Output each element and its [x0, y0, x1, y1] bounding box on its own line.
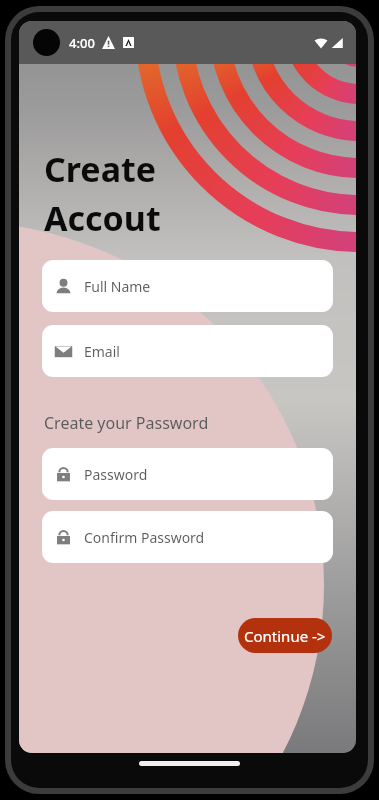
staticText: Create Accout: [44, 146, 161, 241]
staticText: Confirm Password: [84, 528, 205, 547]
staticText: Create your Password: [44, 412, 209, 434]
staticText: Continue ->: [244, 626, 326, 646]
button[interactable]: Continue ->: [238, 618, 332, 653]
staticText: Email: [84, 342, 120, 361]
button[interactable]: Password: [42, 448, 333, 500]
button[interactable]: Email: [42, 325, 333, 377]
staticText: Full Name: [84, 277, 151, 296]
staticText: Password: [84, 465, 148, 484]
button[interactable]: Full Name: [42, 260, 333, 312]
button[interactable]: Confirm Password: [42, 511, 333, 563]
staticText: 4:00: [69, 34, 95, 52]
